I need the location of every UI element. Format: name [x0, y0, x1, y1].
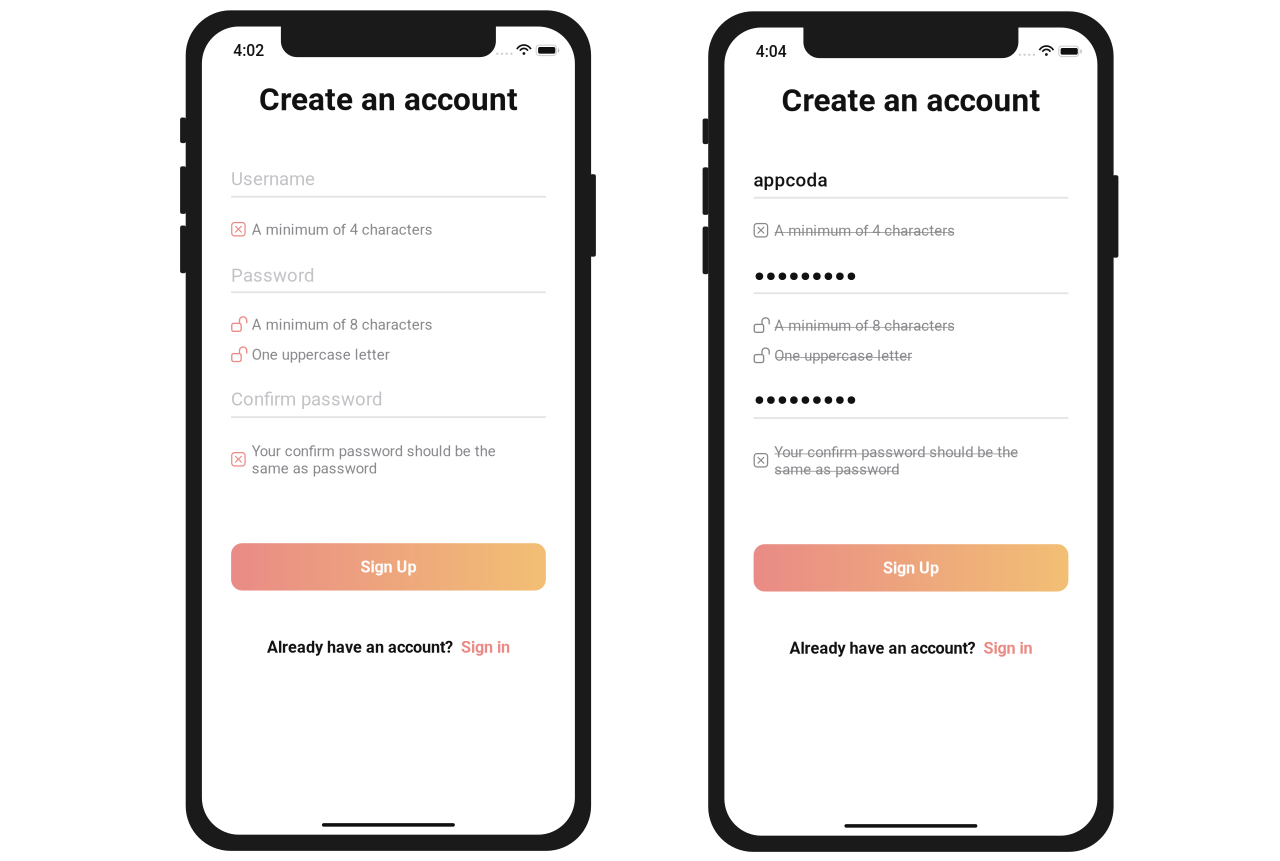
staticText: A minimum of 4 characters	[774, 222, 955, 239]
staticText: Password	[231, 264, 314, 286]
staticText: One uppercase letter	[774, 347, 912, 364]
button[interactable]: Password	[754, 261, 1068, 292]
button[interactable]: Sign Up	[231, 543, 546, 590]
staticText: Username	[231, 168, 315, 190]
staticText: One uppercase letter	[252, 346, 390, 363]
staticText: Sign in	[975, 639, 1032, 658]
staticText: A minimum of 8 characters	[774, 317, 955, 334]
staticText: Already have an account?	[267, 638, 453, 657]
staticText: appcoda	[754, 169, 828, 191]
staticText: 4:02	[233, 41, 264, 60]
staticText: Your confirm password should be the same…	[252, 442, 496, 477]
button[interactable]: Already have an account?	[724, 637, 1097, 659]
button[interactable]: Sign Up	[754, 544, 1068, 591]
staticText: Sign Up	[360, 557, 416, 576]
button[interactable]: Already have an account?	[202, 636, 575, 658]
staticText: Confirm password	[231, 388, 382, 410]
button[interactable]: Username	[231, 163, 546, 194]
staticText: A minimum of 4 characters	[252, 221, 433, 238]
button[interactable]: Confirm password	[754, 385, 1068, 416]
button[interactable]: Password	[231, 260, 546, 291]
staticText: Your confirm password should be the same…	[774, 443, 1018, 478]
staticText: 4:04	[756, 42, 787, 61]
button[interactable]: appcoda	[754, 164, 1068, 195]
staticText: Sign in	[453, 638, 510, 657]
staticText: Sign Up	[883, 558, 939, 577]
staticText: Already have an account?	[789, 639, 975, 658]
staticText: Create an account	[259, 81, 518, 118]
staticText: A minimum of 8 characters	[252, 316, 433, 333]
staticText: Create an account	[781, 82, 1040, 119]
button[interactable]: Confirm password	[231, 384, 546, 415]
